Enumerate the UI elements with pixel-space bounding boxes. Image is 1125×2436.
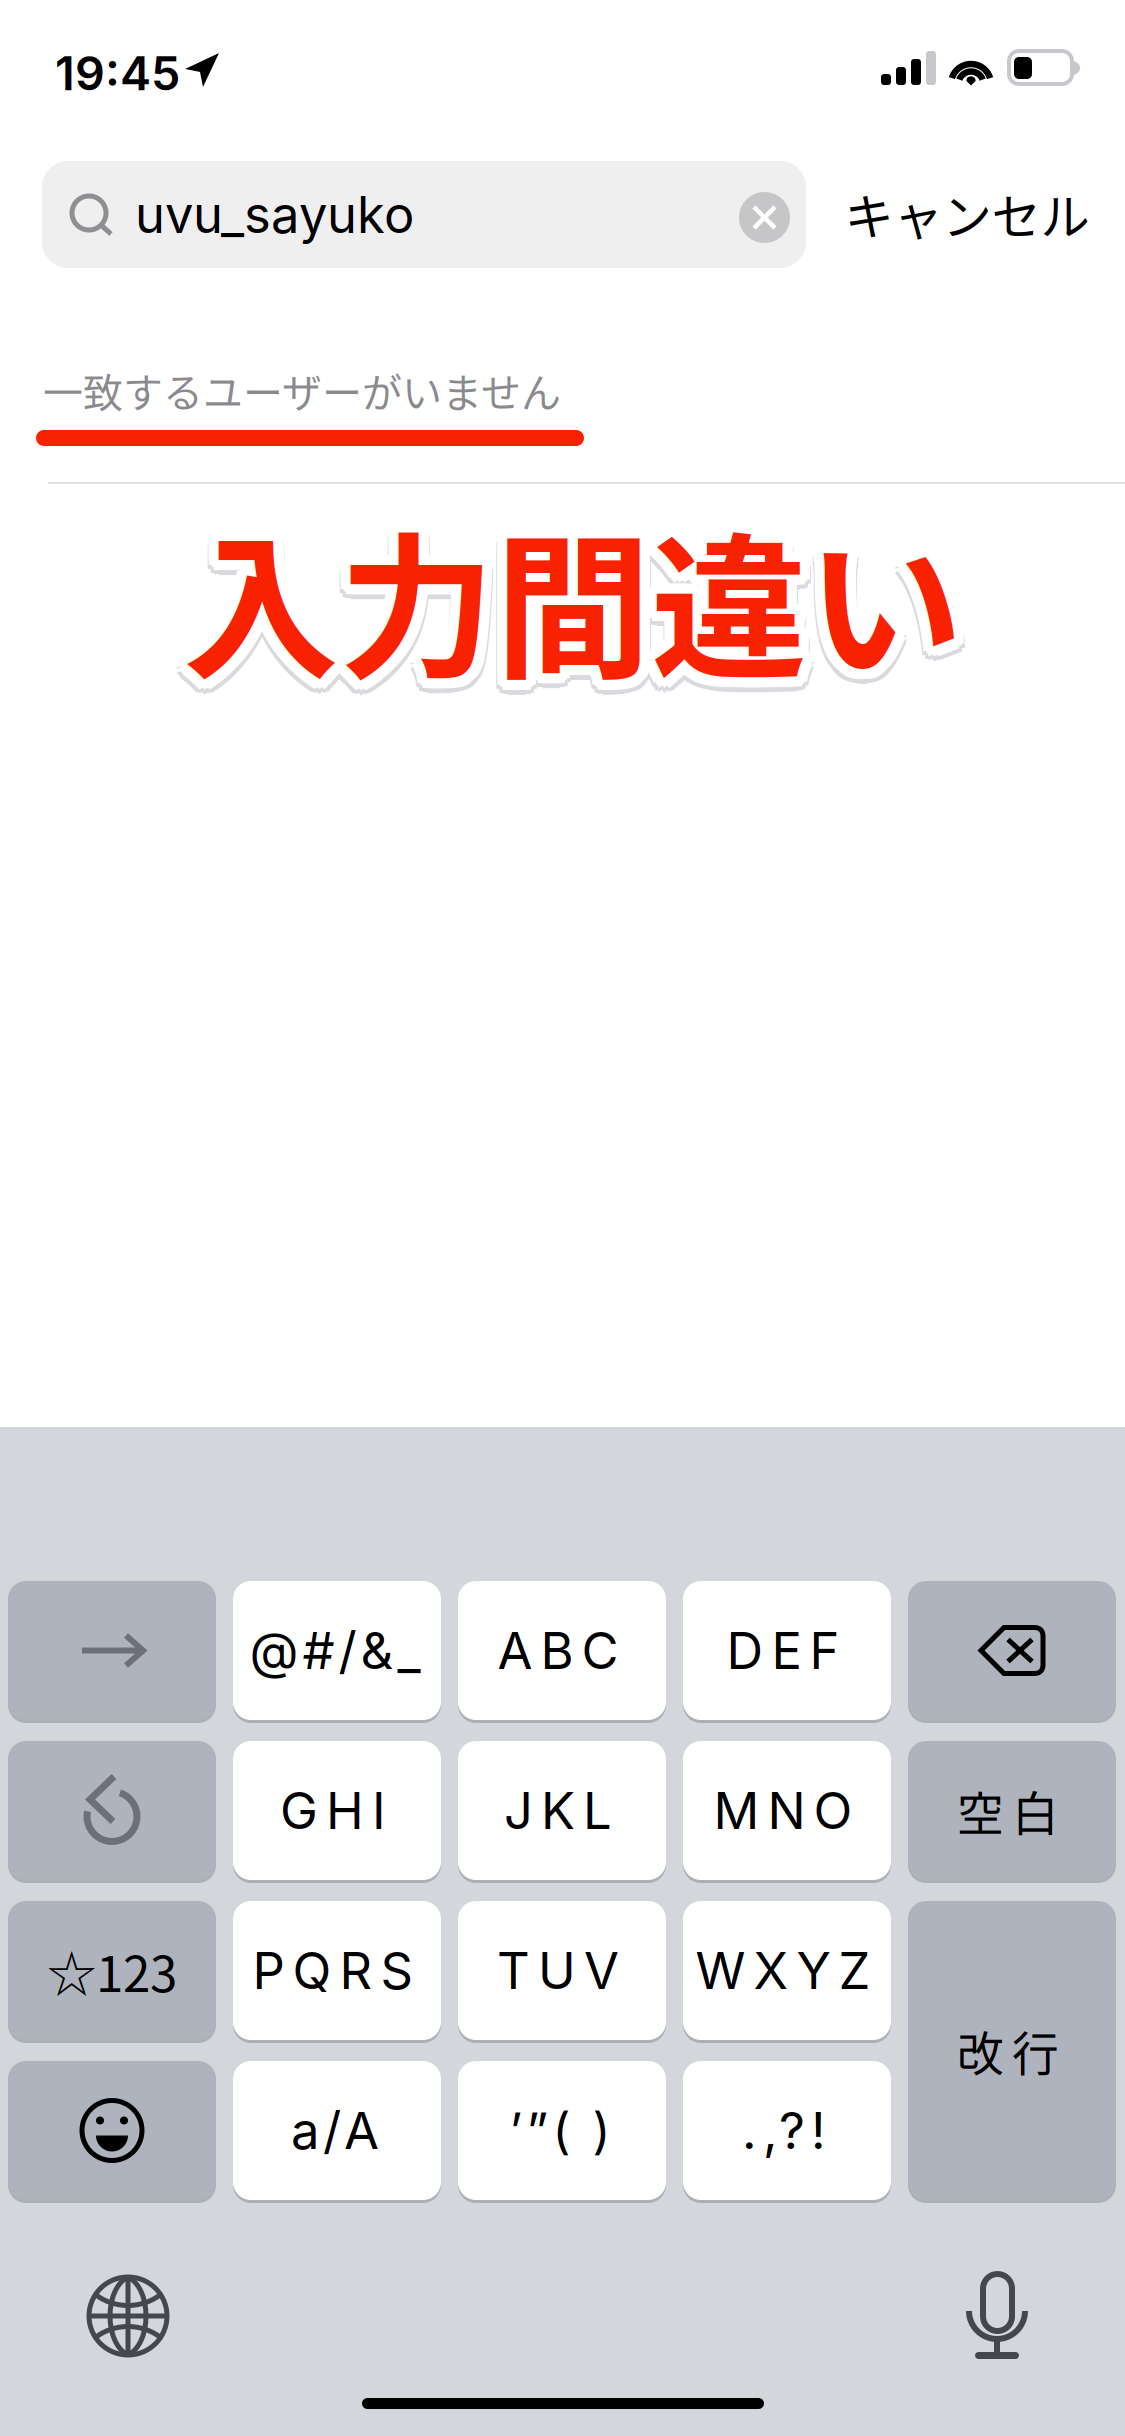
button[interactable]: Emoji bbox=[8, 2061, 216, 2200]
staticText: 入力間違い bbox=[176, 477, 956, 703]
staticText: 入力間違い bbox=[190, 477, 970, 703]
staticText: GHI bbox=[280, 1780, 386, 1841]
button[interactable]: Next candidate bbox=[8, 1581, 216, 1720]
button[interactable]: 空白 bbox=[908, 1741, 1116, 1880]
staticText: 入力間違い bbox=[183, 474, 963, 700]
staticText: 入力間違い bbox=[178, 498, 958, 724]
button[interactable]: DEF bbox=[683, 1581, 891, 1720]
staticText: ☆123 bbox=[47, 1935, 177, 2006]
staticText: 入力間違い bbox=[183, 494, 963, 720]
button[interactable]: ’”( ) bbox=[458, 2061, 666, 2200]
button[interactable]: uvu_sayuko bbox=[42, 161, 806, 268]
button[interactable]: GHI bbox=[233, 1741, 441, 1880]
button[interactable]: JKL bbox=[458, 1741, 666, 1880]
staticText: 入力間違い bbox=[183, 499, 963, 725]
staticText: 入力間違い bbox=[175, 497, 955, 723]
button[interactable]: MNO bbox=[683, 1741, 891, 1880]
staticText: 入力間違い bbox=[178, 494, 958, 720]
staticText: 入力間違い bbox=[173, 484, 953, 710]
staticText: 19:45 bbox=[55, 45, 180, 101]
staticText: 入力間違い bbox=[183, 484, 963, 710]
button[interactable]: PQRS bbox=[233, 1901, 441, 2040]
staticText: @#/&_ bbox=[249, 1620, 420, 1681]
staticText: 入力間違い bbox=[178, 474, 958, 700]
staticText: 入力間違い bbox=[188, 498, 968, 724]
button[interactable]: Switch keyboard bbox=[87, 2275, 169, 2357]
staticText: 空白 bbox=[957, 1777, 1059, 1844]
staticText: 入力間違い bbox=[194, 488, 974, 714]
staticText: uvu_sayuko bbox=[135, 184, 414, 245]
staticText: TUV bbox=[497, 1940, 619, 2001]
button[interactable]: 改行 bbox=[908, 1901, 1116, 2200]
button[interactable]: Delete bbox=[908, 1581, 1116, 1720]
staticText: 入力間違い bbox=[172, 493, 952, 719]
staticText: a/A bbox=[291, 2100, 379, 2161]
button[interactable]: Undo bbox=[8, 1741, 216, 1880]
staticText: 入力間違い bbox=[188, 474, 968, 700]
staticText: 入力間違い bbox=[190, 491, 970, 717]
staticText: 入力間違い bbox=[173, 489, 953, 715]
button[interactable]: @#/&_ bbox=[233, 1581, 441, 1720]
staticText: .,?! bbox=[742, 2100, 826, 2161]
staticText: 入力間違い bbox=[191, 497, 971, 723]
staticText: 入力間違い bbox=[176, 491, 956, 717]
button[interactable]: ABC bbox=[458, 1581, 666, 1720]
button[interactable]: キャンセル bbox=[835, 160, 1099, 267]
staticText: 入力間違い bbox=[193, 479, 973, 705]
staticText: 入力間違い bbox=[193, 484, 973, 710]
staticText: 入力間違い bbox=[193, 489, 973, 715]
staticText: 改行 bbox=[957, 2017, 1059, 2084]
button[interactable]: .,?! bbox=[683, 2061, 891, 2200]
button[interactable]: WXYZ bbox=[683, 1901, 891, 2040]
staticText: ’”( ) bbox=[509, 2101, 610, 2160]
staticText: DEF bbox=[726, 1620, 839, 1681]
button[interactable]: ☆123 bbox=[8, 1901, 216, 2040]
staticText: 入力間違い bbox=[172, 488, 952, 714]
staticText: MNO bbox=[713, 1780, 852, 1841]
button[interactable]: Dictation bbox=[966, 2273, 1028, 2359]
staticText: 一致するユーザーがいません bbox=[43, 361, 561, 419]
button[interactable]: TUV bbox=[458, 1901, 666, 2040]
staticText: JKL bbox=[504, 1780, 612, 1841]
staticText: 入力間違い bbox=[194, 493, 974, 719]
staticText: 入力間違い bbox=[173, 479, 953, 705]
staticText: PQRS bbox=[252, 1940, 413, 2001]
staticText: 入力間違い bbox=[188, 494, 968, 720]
staticText: WXYZ bbox=[695, 1940, 870, 2001]
button[interactable]: a/A bbox=[233, 2061, 441, 2200]
staticText: ABC bbox=[497, 1620, 618, 1681]
staticText: キャンセル bbox=[844, 178, 1089, 249]
